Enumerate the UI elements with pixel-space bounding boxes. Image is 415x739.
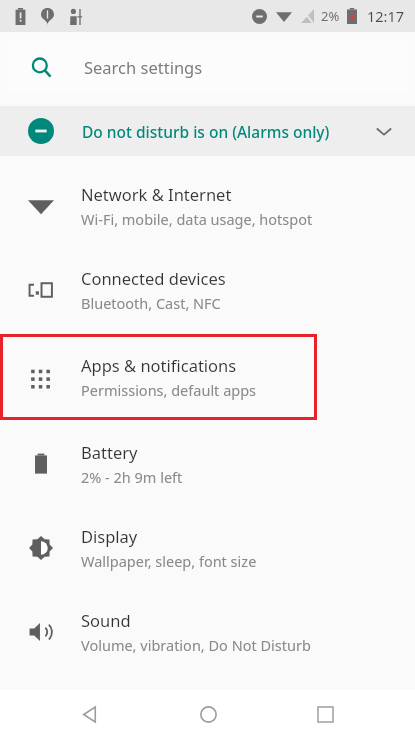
staticText: Battery [81, 441, 138, 463]
staticText: Network & Internet [81, 183, 232, 205]
staticText: Connected devices [81, 267, 226, 289]
button[interactable]: Display [0, 506, 415, 590]
button[interactable]: Home [180, 690, 236, 739]
button[interactable]: Connected devices [0, 248, 415, 332]
staticText: Bluetooth, Cast, NFC [81, 293, 221, 313]
other: Search [31, 57, 52, 78]
button[interactable]: Apps & notifications [0, 332, 415, 422]
staticText: Wi-Fi, mobile, data usage, hotspot [81, 209, 313, 229]
staticText: 12:17 [367, 6, 405, 26]
staticText: Permissions, default apps [81, 380, 257, 400]
staticText: Display [81, 525, 138, 547]
button[interactable]: Battery [0, 422, 415, 506]
staticText: Do not disturb is on (Alarms only) [82, 121, 375, 142]
button[interactable]: Do not disturb is on (Alarms only) [0, 106, 415, 156]
button[interactable]: Search [8, 40, 407, 94]
staticText: Volume, vibration, Do Not Disturb [81, 635, 311, 655]
button[interactable]: Network & Internet [0, 164, 415, 248]
button[interactable]: Back [62, 690, 118, 739]
staticText: Search settings [84, 56, 203, 78]
staticText: Wallpaper, sleep, font size [81, 551, 257, 571]
staticText: Apps & notifications [81, 354, 237, 376]
button[interactable]: Sound [0, 590, 415, 674]
staticText: 2% [321, 7, 340, 25]
staticText: 2% - 2h 9m left [81, 467, 183, 487]
other: Expand [375, 122, 393, 140]
button[interactable]: Recents [297, 690, 353, 739]
staticText: Sound [81, 609, 131, 631]
